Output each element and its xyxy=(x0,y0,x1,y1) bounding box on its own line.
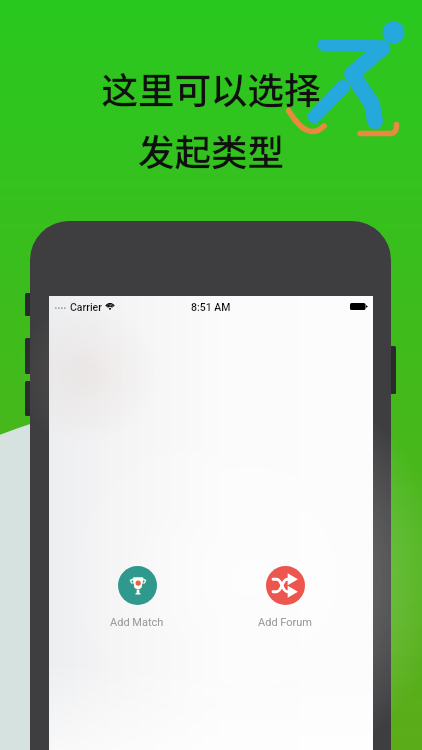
staticText: Add Match xyxy=(110,616,164,629)
staticText: Add Forum xyxy=(258,616,312,629)
staticText: 发起类型 xyxy=(0,124,422,177)
button[interactable]: Add Forum xyxy=(245,564,325,631)
staticText: 这里可以选择 xyxy=(0,62,422,115)
button[interactable]: Add Match xyxy=(97,564,177,631)
staticText: Carrier xyxy=(70,301,102,313)
staticText: 8:51 AM xyxy=(191,301,231,313)
